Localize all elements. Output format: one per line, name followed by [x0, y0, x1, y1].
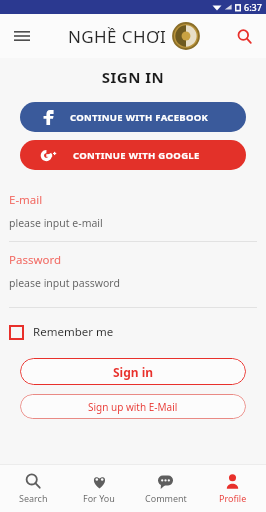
- button[interactable]: Menu: [5, 19, 39, 53]
- staticText: For You: [83, 492, 115, 504]
- staticText: Sign in: [113, 364, 154, 380]
- button[interactable]: CONTINUE WITH FACEBOOK: [20, 102, 246, 132]
- staticText: Sign up with E-Mail: [88, 400, 178, 414]
- staticText: SIGN IN: [0, 67, 266, 87]
- button[interactable]: Sign up with E-Mail: [20, 394, 246, 419]
- staticText: E-mail: [9, 192, 43, 208]
- button[interactable]: For You: [66, 465, 132, 512]
- staticText: CONTINUE WITH FACEBOOK: [70, 111, 209, 124]
- staticText: Comment: [145, 492, 187, 504]
- staticText: NGHỀ CHƠI: [68, 25, 167, 48]
- button[interactable]: Search: [227, 19, 261, 53]
- button[interactable]: CONTINUE WITH GOOGLE: [20, 140, 246, 170]
- staticText: Password: [9, 252, 62, 268]
- button[interactable]: please input e-mail: [9, 216, 257, 230]
- staticText: 6:37: [244, 1, 262, 13]
- button[interactable]: Remember me: [9, 318, 114, 346]
- staticText: Remember me: [33, 324, 114, 340]
- button[interactable]: Profile: [199, 465, 266, 512]
- staticText: Profile: [219, 492, 247, 504]
- button[interactable]: Sign in: [20, 358, 246, 385]
- button[interactable]: Search: [0, 465, 66, 512]
- staticText: CONTINUE WITH GOOGLE: [73, 149, 200, 162]
- button[interactable]: please input password: [9, 276, 257, 290]
- staticText: Search: [19, 492, 48, 504]
- button[interactable]: Comment: [132, 465, 199, 512]
